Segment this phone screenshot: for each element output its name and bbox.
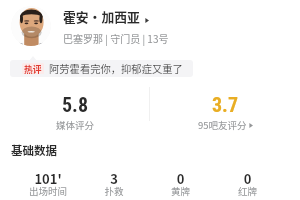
staticText: 3: [81, 169, 147, 199]
staticText: 扑救: [81, 184, 147, 200]
staticText: 出场时间: [15, 184, 81, 200]
button[interactable]: 0: [214, 169, 281, 199]
staticText: 黄牌: [147, 184, 214, 200]
button[interactable]: 热评: [10, 60, 193, 77]
button[interactable]: 3: [81, 169, 147, 199]
staticText: 霍安·加西亚: [63, 7, 140, 26]
staticText: 基础数据: [11, 142, 57, 159]
staticText: 阿劳霍看完你，抑郁症又重了: [49, 61, 183, 76]
button[interactable]: 3.7: [150, 93, 300, 133]
staticText: 巴塞罗那 | 守门员 | 13号: [63, 31, 169, 45]
staticText: 3.7: [150, 93, 300, 116]
staticText: 热评: [24, 63, 42, 74]
button[interactable]: 5.8: [0, 93, 150, 133]
staticText: 95吧友评分: [198, 118, 247, 132]
staticText: 媒体评分: [0, 118, 150, 132]
staticText: 0: [214, 169, 281, 199]
button[interactable]: 0: [147, 169, 214, 199]
staticText: 红牌: [214, 184, 281, 200]
button[interactable]: 101': [15, 169, 81, 199]
button[interactable]: [11, 6, 103, 46]
staticText: 101': [15, 169, 81, 199]
staticText: 0: [147, 169, 214, 199]
staticText: 5.8: [0, 93, 150, 116]
button[interactable]: 霍安·加西亚: [63, 7, 149, 26]
